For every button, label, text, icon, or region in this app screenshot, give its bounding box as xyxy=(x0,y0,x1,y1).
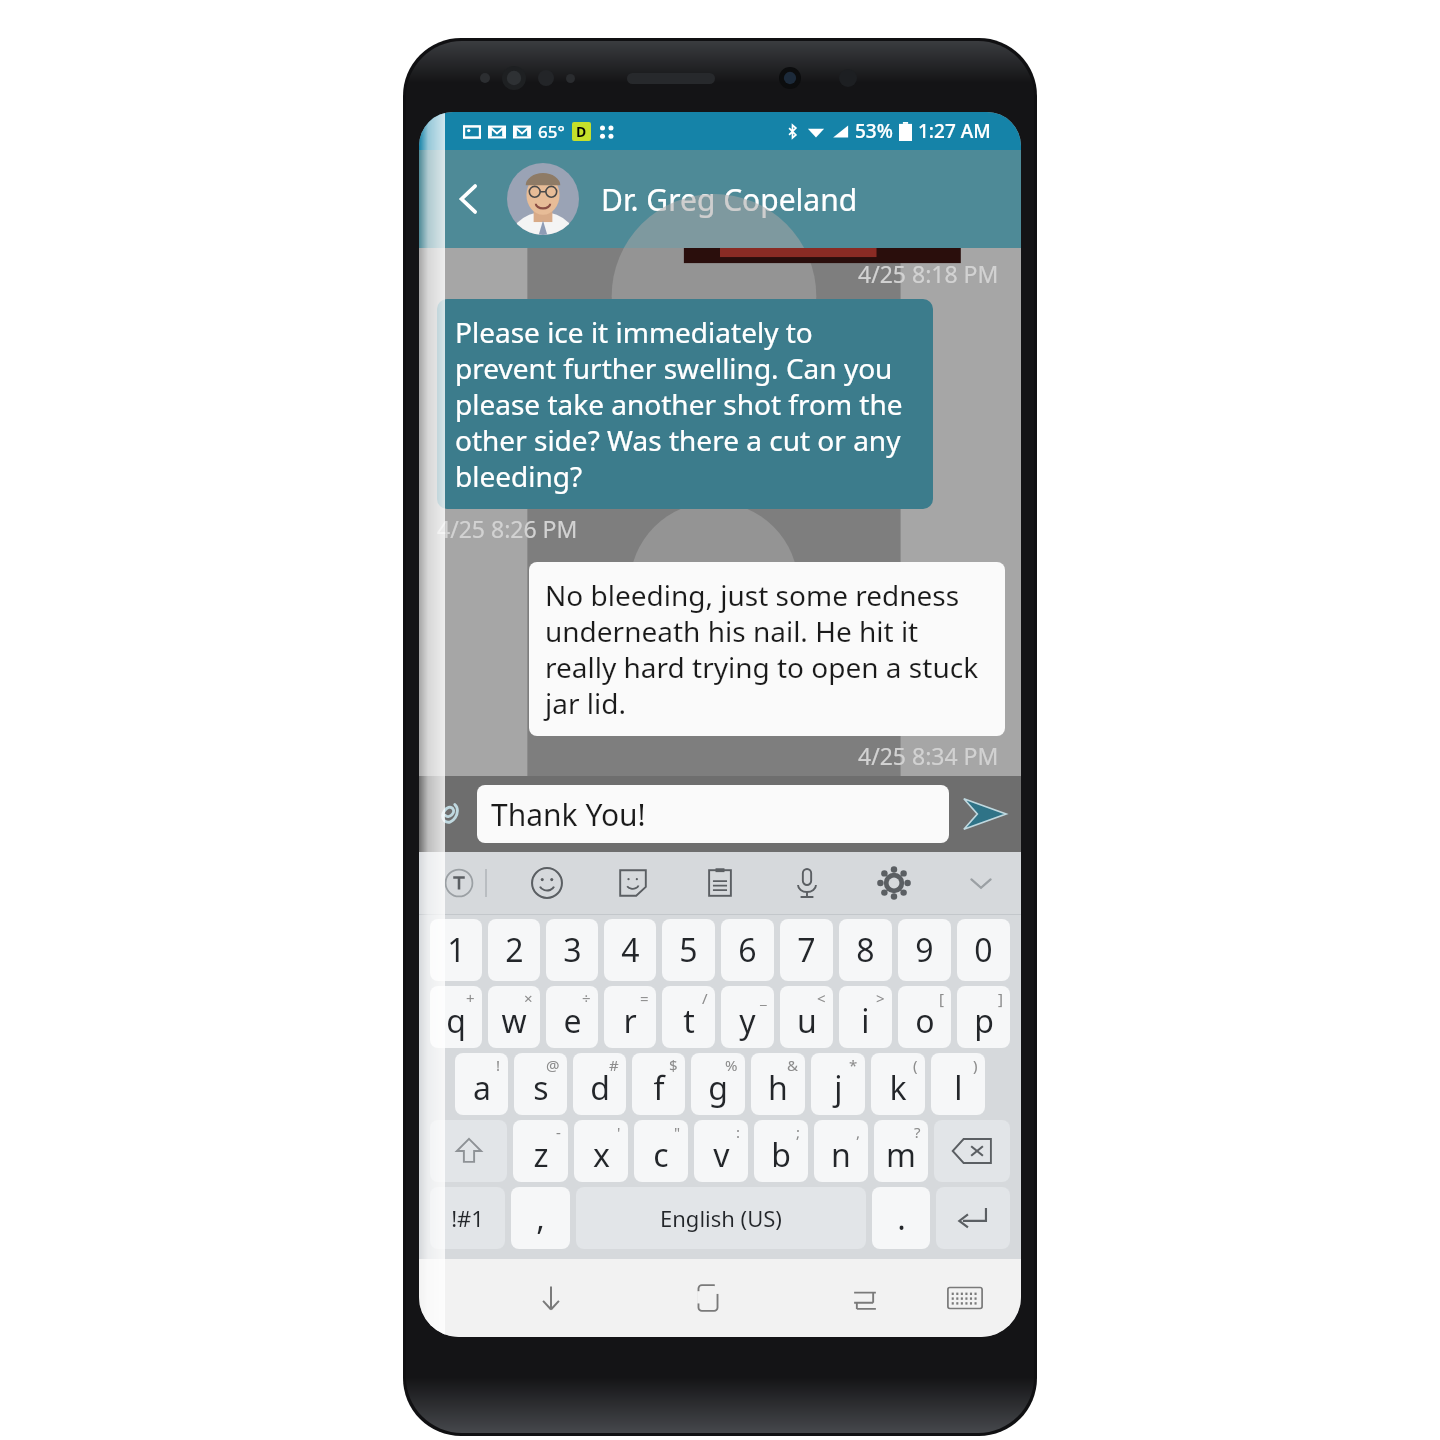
staticText: Thank You! xyxy=(491,794,646,835)
staticText: w xyxy=(501,999,527,1043)
button[interactable]: % xyxy=(691,1053,745,1115)
staticText: g xyxy=(708,1066,728,1110)
staticText: ( xyxy=(913,1055,918,1075)
button[interactable] xyxy=(936,1187,1010,1249)
button[interactable]: " xyxy=(634,1120,688,1182)
button[interactable]: Clipboard xyxy=(694,857,746,909)
button[interactable]: ; xyxy=(754,1120,808,1182)
staticText: y xyxy=(739,999,756,1043)
button[interactable]: / xyxy=(662,986,715,1048)
button[interactable]: 6 xyxy=(721,919,774,981)
staticText: = xyxy=(640,988,649,1008)
button[interactable]: Send xyxy=(949,776,1021,852)
button[interactable]: _ xyxy=(721,986,774,1048)
button[interactable]: ? xyxy=(874,1120,928,1182)
button[interactable]: 3 xyxy=(546,919,598,981)
button[interactable]: . xyxy=(872,1187,930,1249)
staticText: 2 xyxy=(505,928,524,972)
button[interactable]: Hide keyboard xyxy=(518,1265,584,1331)
button[interactable]: ] xyxy=(957,986,1010,1048)
button[interactable]: Text mode xyxy=(433,857,485,909)
staticText: & xyxy=(787,1055,798,1075)
staticText: × xyxy=(524,988,533,1008)
staticText: No bleeding, just some redness underneat… xyxy=(545,576,989,722)
button[interactable]: $ xyxy=(632,1053,685,1115)
button[interactable]: Recents xyxy=(832,1265,898,1331)
button[interactable] xyxy=(430,1120,507,1182)
staticText: p xyxy=(974,999,994,1043)
staticText: u xyxy=(797,999,817,1043)
button[interactable]: No bleeding, just some redness underneat… xyxy=(529,562,1005,736)
staticText: ) xyxy=(973,1055,978,1075)
staticText: ÷ xyxy=(582,988,591,1008)
staticText: - xyxy=(556,1122,561,1142)
button[interactable]: = xyxy=(604,986,656,1048)
staticText: t xyxy=(683,999,695,1043)
button[interactable]: # xyxy=(573,1053,626,1115)
staticText: a xyxy=(473,1066,491,1110)
button[interactable]: 4 xyxy=(604,919,656,981)
button[interactable]: Thank You! xyxy=(477,785,949,843)
button[interactable]: Emoji xyxy=(521,857,573,909)
button[interactable]: !#1 xyxy=(430,1187,505,1249)
button[interactable]: 0 xyxy=(957,919,1010,981)
staticText: k xyxy=(889,1066,907,1110)
button[interactable]: + xyxy=(430,986,482,1048)
button[interactable]: > xyxy=(839,986,892,1048)
staticText: ' xyxy=(617,1122,621,1142)
staticText: d xyxy=(590,1066,610,1110)
staticText: $ xyxy=(669,1055,678,1075)
button[interactable]: 8 xyxy=(839,919,892,981)
button[interactable]: 1 xyxy=(430,919,482,981)
staticText: 53% xyxy=(855,118,893,144)
button[interactable]: Attach file xyxy=(419,776,477,852)
button[interactable]: ' xyxy=(574,1120,628,1182)
staticText: 4/25 8:34 PM xyxy=(858,740,999,771)
button[interactable]: × xyxy=(488,986,540,1048)
staticText: [ xyxy=(939,988,944,1008)
button[interactable]: @ xyxy=(514,1053,567,1115)
staticText: ? xyxy=(914,1122,921,1142)
button[interactable]: ( xyxy=(871,1053,925,1115)
button[interactable]: Back xyxy=(441,171,497,227)
button[interactable]: [ xyxy=(898,986,951,1048)
staticText: f xyxy=(653,1066,665,1110)
button[interactable]: Keyboard settings xyxy=(868,857,920,909)
button[interactable]: Voice input xyxy=(781,857,833,909)
button[interactable]: ) xyxy=(931,1053,985,1115)
button[interactable]: Contact photo xyxy=(507,163,579,235)
button[interactable]: ÷ xyxy=(546,986,598,1048)
button[interactable]: English (US) xyxy=(576,1187,866,1249)
button[interactable]: Stickers xyxy=(607,857,659,909)
staticText: v xyxy=(713,1133,730,1177)
button[interactable]: ! xyxy=(455,1053,508,1115)
button[interactable]: * xyxy=(811,1053,865,1115)
button[interactable]: 7 xyxy=(780,919,833,981)
staticText: Dr. Greg Copeland xyxy=(601,179,858,220)
button[interactable]: - xyxy=(513,1120,568,1182)
button[interactable]: 2 xyxy=(488,919,540,981)
button[interactable]: < xyxy=(780,986,833,1048)
button[interactable] xyxy=(934,1120,1010,1182)
button[interactable]: : xyxy=(694,1120,748,1182)
staticText: r xyxy=(623,999,637,1043)
staticText: x xyxy=(593,1133,610,1177)
button[interactable]: Please ice it immediately to prevent fur… xyxy=(437,299,933,509)
staticText: ! xyxy=(496,1055,501,1075)
button[interactable]: 5 xyxy=(662,919,715,981)
button[interactable]: Home xyxy=(675,1265,741,1331)
staticText: , xyxy=(856,1122,861,1142)
staticText: 3 xyxy=(563,928,582,972)
button[interactable]: , xyxy=(814,1120,868,1182)
staticText: " xyxy=(674,1122,681,1142)
staticText: % xyxy=(725,1055,738,1075)
staticText: e xyxy=(563,999,582,1043)
button[interactable]: & xyxy=(751,1053,805,1115)
button[interactable]: Collapse toolbar xyxy=(955,857,1007,909)
button[interactable]: Change keyboard xyxy=(932,1265,998,1331)
staticText: s xyxy=(533,1066,549,1110)
staticText: j xyxy=(834,1066,843,1110)
button[interactable]: , xyxy=(511,1187,570,1249)
staticText: 9 xyxy=(915,928,934,972)
button[interactable]: 9 xyxy=(898,919,951,981)
